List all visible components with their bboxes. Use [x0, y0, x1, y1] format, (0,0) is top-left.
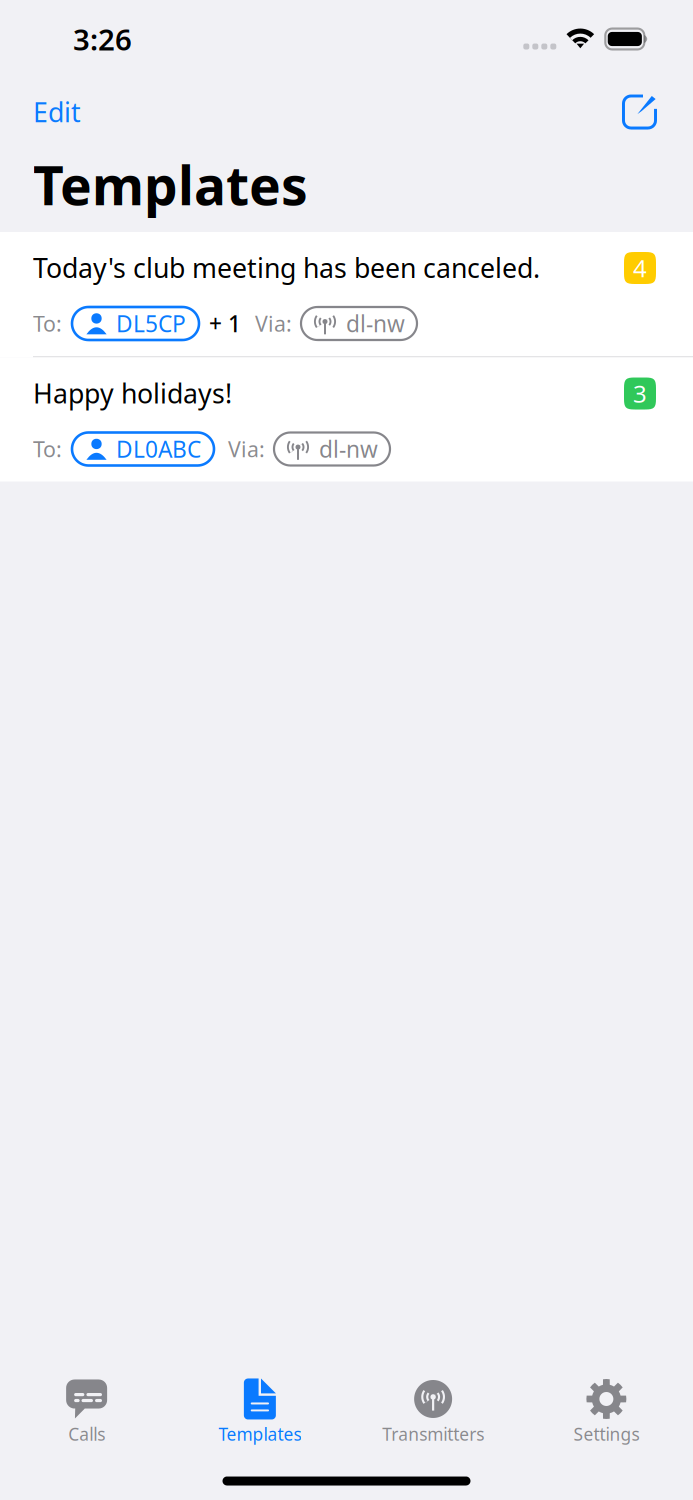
button[interactable]: Happy holidays!	[0, 357, 693, 481]
button[interactable]: Edit	[33, 85, 81, 139]
staticText: Today's club meeting has been canceled.	[33, 250, 540, 285]
staticText: Transmitters	[382, 1422, 484, 1445]
staticText: dl-nw	[346, 308, 405, 338]
staticText: Via:	[228, 435, 265, 463]
staticText: dl-nw	[319, 434, 378, 464]
staticText: DL0ABC	[116, 434, 201, 464]
staticText: Calls	[68, 1422, 105, 1445]
staticText: Via:	[255, 309, 292, 338]
button[interactable]: Today's club meeting has been canceled.	[0, 232, 693, 356]
button[interactable]: Calls	[0, 1370, 173, 1457]
staticText: 4	[633, 252, 647, 284]
button[interactable]: dl-nw	[301, 307, 417, 340]
button[interactable]: Compose	[622, 92, 660, 131]
staticText: To:	[33, 435, 62, 463]
staticText: 3:26	[73, 19, 132, 58]
button[interactable]: dl-nw	[274, 432, 390, 465]
button[interactable]: Settings	[520, 1370, 693, 1457]
staticText: Happy holidays!	[33, 375, 232, 411]
staticText: Templates	[218, 1422, 301, 1445]
button[interactable]: DL5CP	[72, 307, 199, 340]
staticText: Settings	[573, 1422, 639, 1445]
button[interactable]: DL0ABC	[72, 432, 214, 465]
button[interactable]: Transmitters	[346, 1370, 520, 1457]
staticText: Edit	[33, 94, 81, 130]
staticText: + 1	[209, 308, 241, 338]
staticText: To:	[33, 309, 62, 338]
staticText: 3	[633, 378, 647, 409]
staticText: Templates	[33, 149, 308, 220]
staticText: DL5CP	[116, 308, 186, 338]
button[interactable]: Templates	[173, 1370, 346, 1457]
